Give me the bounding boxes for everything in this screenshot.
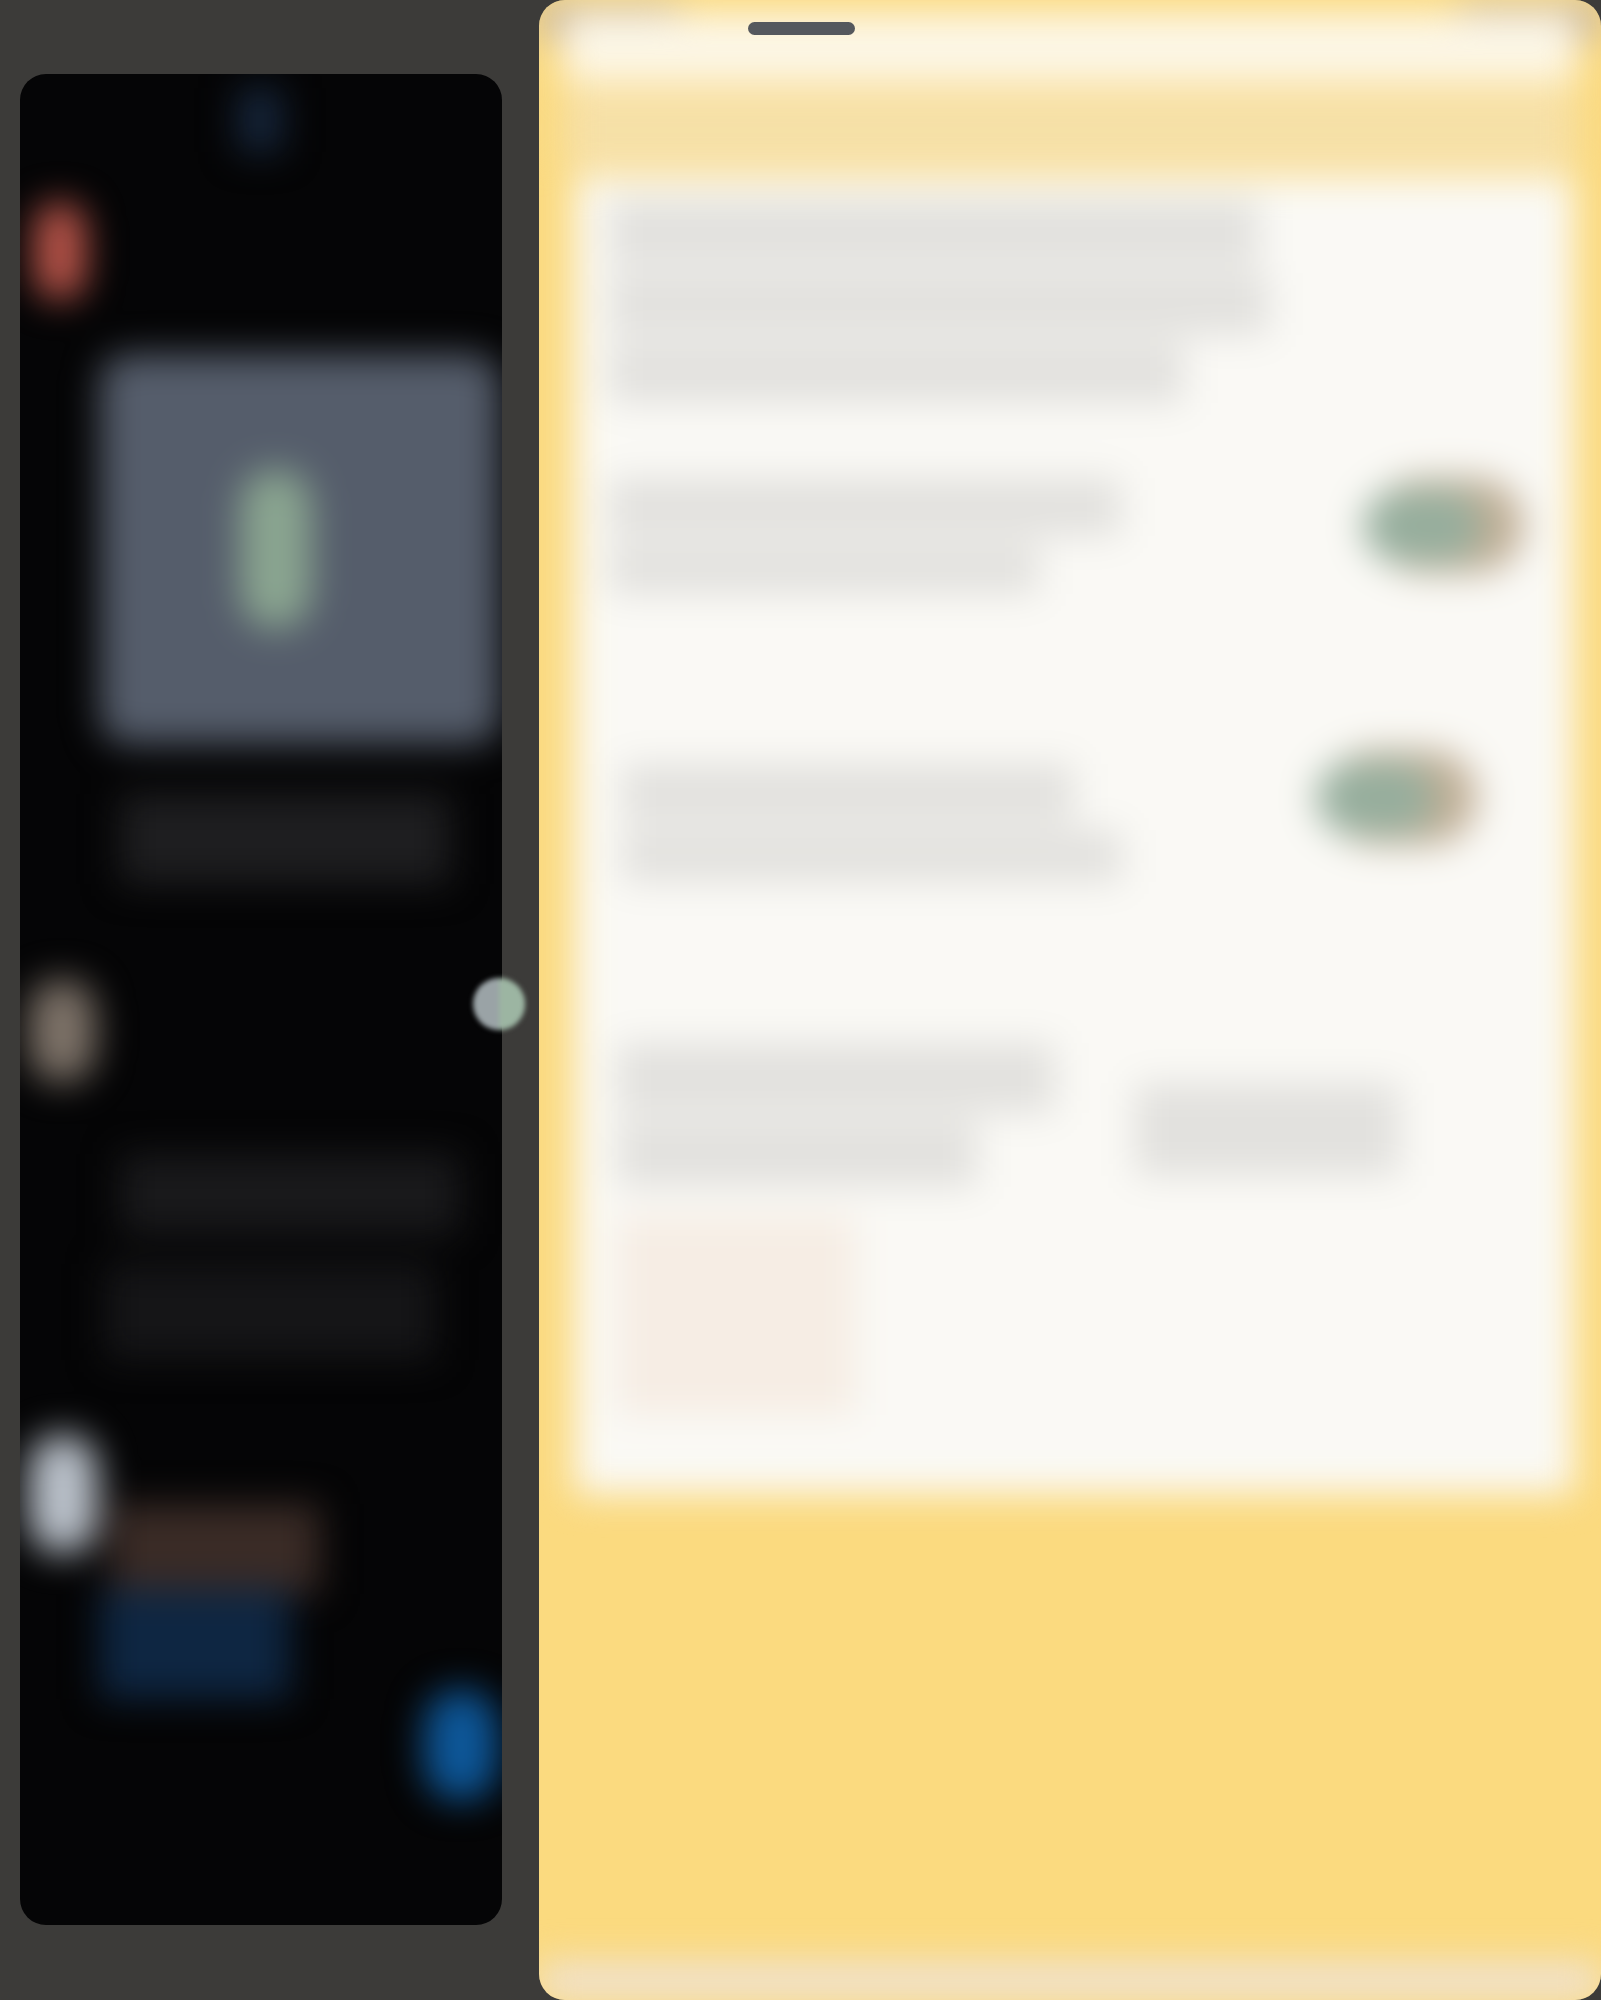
button[interactable]: Compose (416, 1674, 502, 1798)
button[interactable]: Toggle setting (1329, 468, 1519, 628)
button[interactable]: Background app window (20, 74, 502, 1925)
button[interactable]: Conversation with contact (20, 954, 502, 1254)
button[interactable]: Heading (574, 176, 1574, 426)
button[interactable]: Conversation with contact (20, 1414, 502, 1714)
button[interactable]: Status badge (469, 974, 529, 1034)
button[interactable]: Detail row (574, 1010, 1574, 1270)
button[interactable]: Setting row with switch (574, 710, 1574, 950)
button[interactable]: Toggle setting (1282, 740, 1472, 900)
button[interactable]: Setting row with switch (574, 440, 1574, 670)
button[interactable]: Drag handle (748, 22, 855, 35)
